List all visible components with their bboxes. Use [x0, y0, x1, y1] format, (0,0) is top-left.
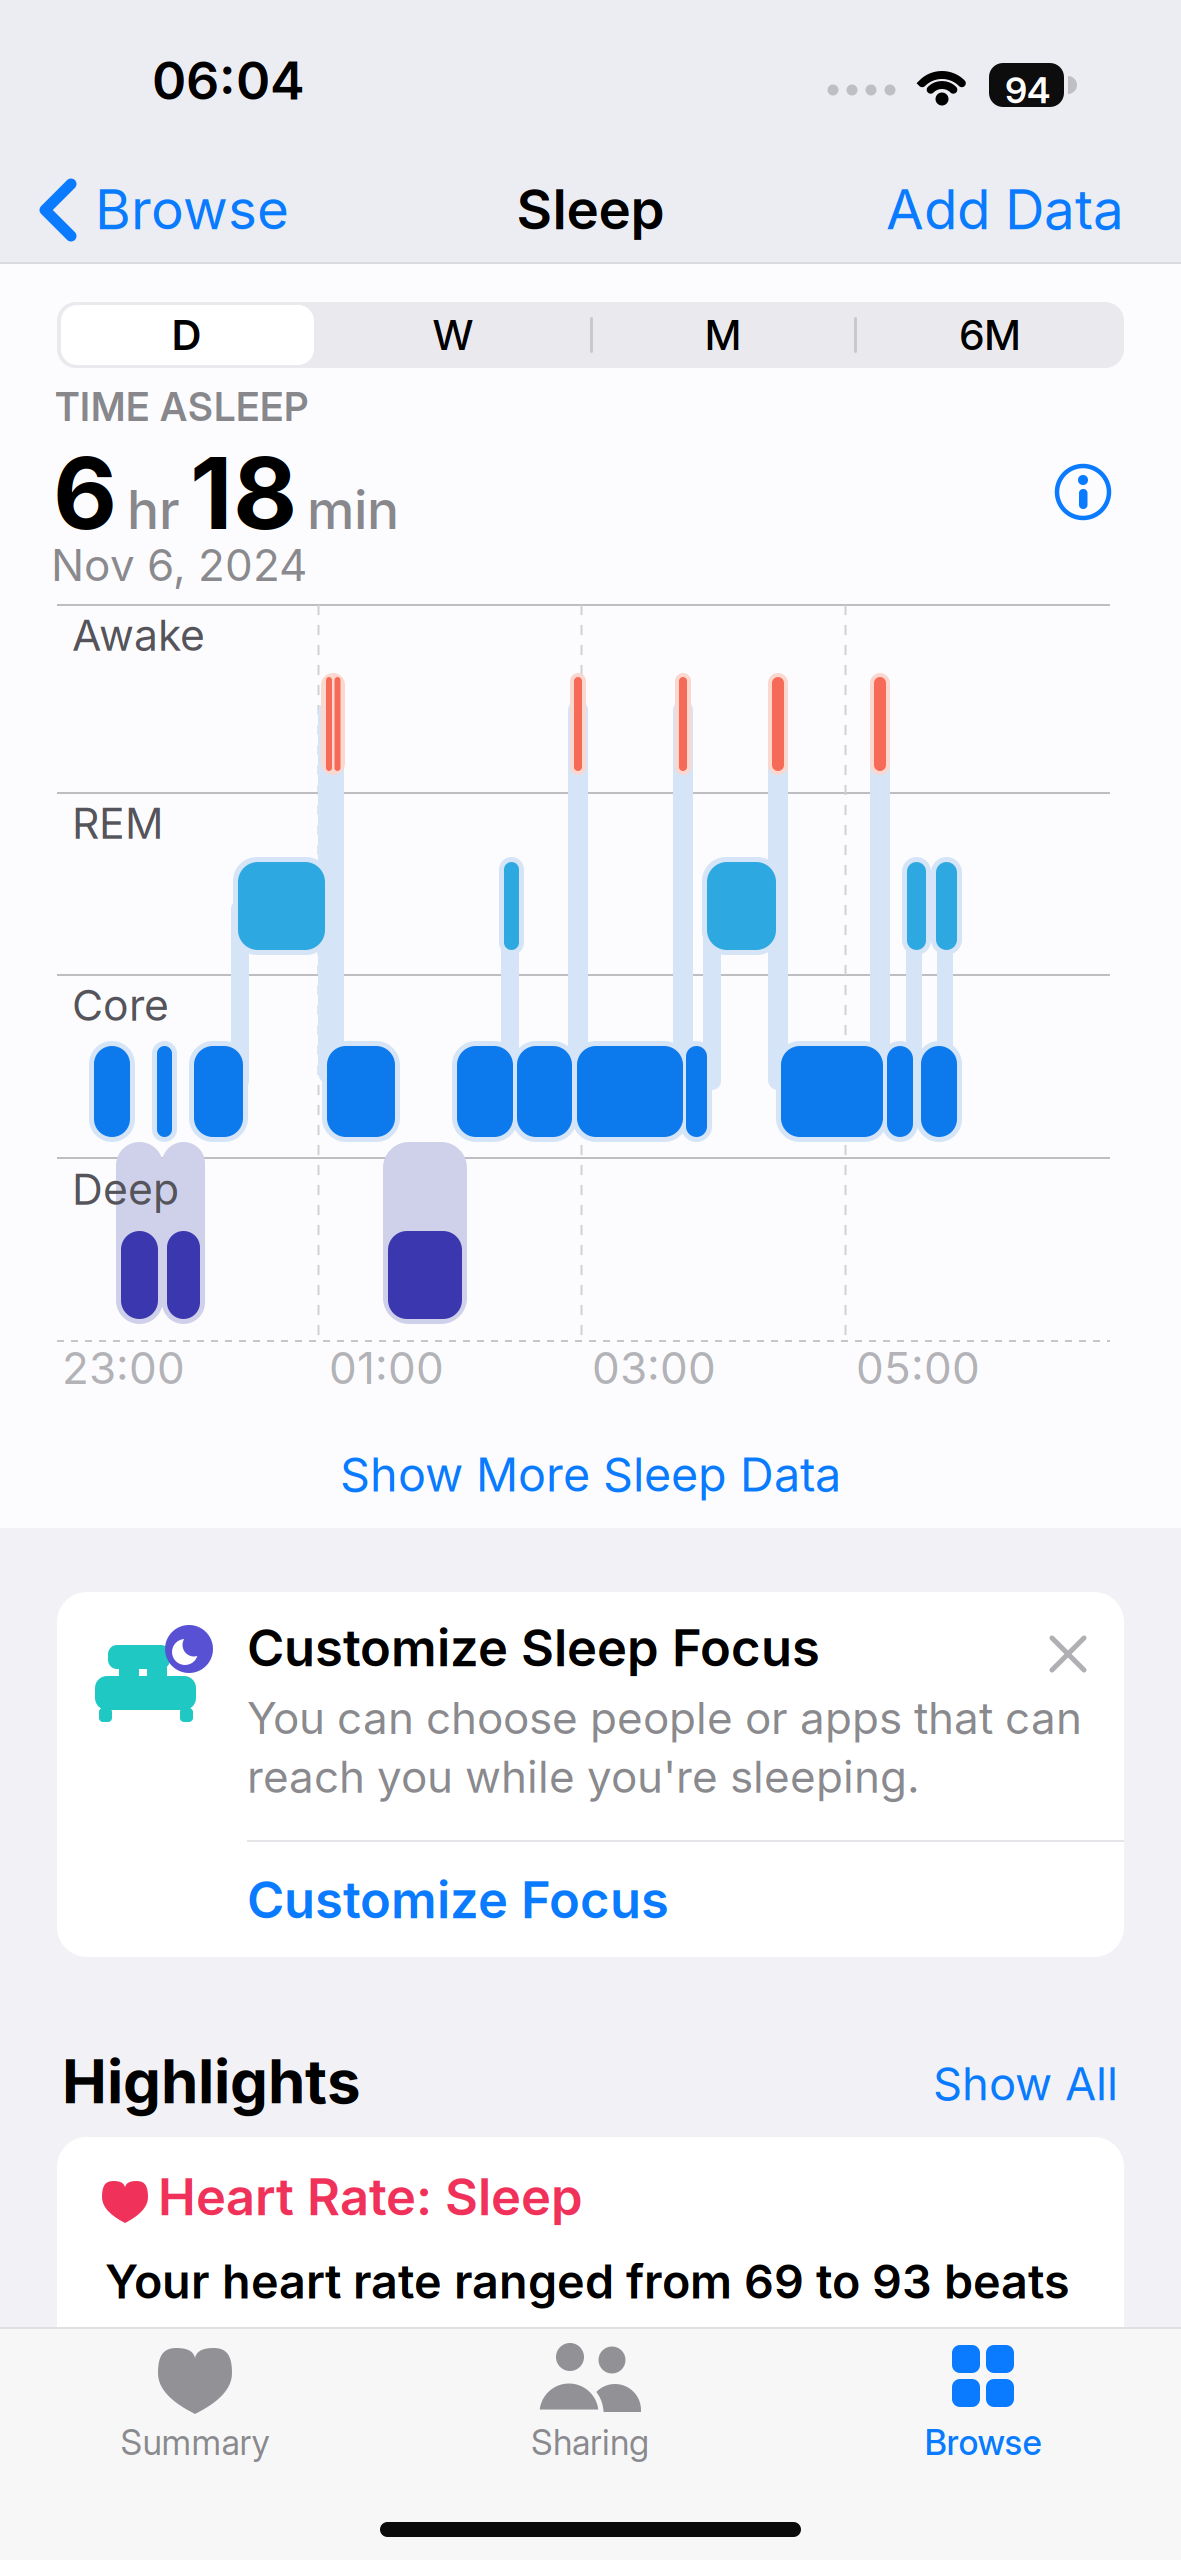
- button[interactable]: Browse: [40, 170, 290, 250]
- button[interactable]: Heart Rate: Sleep: [57, 2137, 1124, 2560]
- button[interactable]: Show More Sleep Data: [340, 1447, 841, 1502]
- staticText: Sharing: [531, 2422, 649, 2463]
- button[interactable]: Show All: [933, 2057, 1118, 2110]
- staticText: Summary: [120, 2422, 269, 2463]
- staticText: min: [307, 478, 399, 541]
- button[interactable]: Dismiss: [1028, 1614, 1108, 1694]
- staticText: Browse: [924, 2422, 1041, 2463]
- staticText: hr: [127, 478, 180, 541]
- staticText: Browse: [95, 177, 289, 241]
- staticText: Highlights: [62, 2046, 361, 2117]
- staticText: Heart Rate: Sleep: [158, 2167, 583, 2227]
- staticText: Customize Sleep Focus: [247, 1618, 820, 1678]
- staticText: 01:00: [329, 1342, 444, 1394]
- staticText: REM: [72, 798, 164, 848]
- staticText: Sleep: [516, 177, 664, 241]
- staticText: Nov 6, 2024: [51, 539, 307, 591]
- staticText: M: [705, 311, 741, 359]
- button[interactable]: Sharing: [395, 2327, 785, 2487]
- staticText: Awake: [72, 610, 205, 660]
- button[interactable]: Summary: [0, 2327, 390, 2487]
- button[interactable]: D: [58, 302, 315, 368]
- staticText: 6: [53, 435, 117, 551]
- staticText: Add Data: [886, 177, 1124, 241]
- button[interactable]: Add Data: [886, 177, 1124, 241]
- button[interactable]: Customize Focus: [247, 1870, 669, 1930]
- button[interactable]: Browse: [788, 2327, 1178, 2487]
- staticText: Your heart rate ranged from 69 to 93 bea…: [105, 2254, 1070, 2309]
- staticText: 06:04: [152, 50, 305, 111]
- staticText: W: [433, 311, 473, 359]
- button[interactable]: M: [593, 302, 853, 368]
- button[interactable]: W: [318, 302, 588, 368]
- staticText: 6M: [959, 311, 1020, 359]
- staticText: 94: [1005, 69, 1050, 111]
- staticText: TIME ASLEEP: [55, 384, 308, 430]
- staticText: 23:00: [62, 1342, 185, 1394]
- staticText: 05:00: [856, 1342, 980, 1394]
- button[interactable]: More info: [1045, 454, 1121, 530]
- staticText: 03:00: [592, 1342, 716, 1394]
- staticText: Core: [72, 980, 169, 1030]
- staticText: 18: [190, 435, 297, 551]
- staticText: D: [172, 311, 201, 359]
- staticText: Deep: [72, 1164, 179, 1214]
- staticText: Show More Sleep Data: [340, 1447, 841, 1502]
- staticText: You can choose people or apps that can r…: [247, 1692, 1082, 1803]
- staticText: Show All: [933, 2057, 1118, 2110]
- staticText: Customize Focus: [247, 1870, 669, 1930]
- button[interactable]: 6M: [857, 302, 1123, 368]
